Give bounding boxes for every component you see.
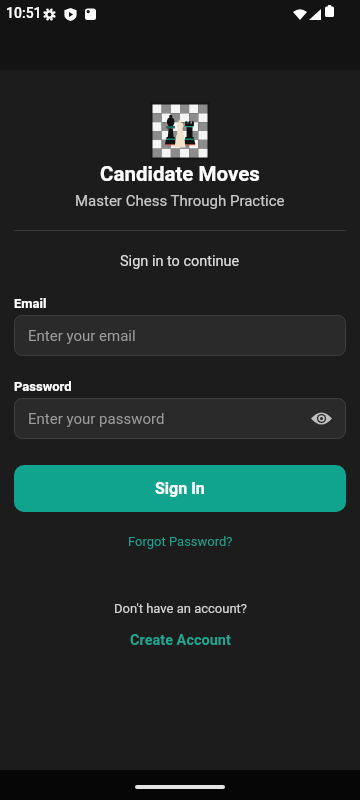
staticText: 10:51 <box>6 5 42 21</box>
staticText: Master Chess Through Practice <box>75 192 285 210</box>
staticText: Create Account <box>130 632 231 649</box>
staticText: Enter your password <box>28 410 165 428</box>
staticText: Email <box>14 296 47 311</box>
button[interactable]: Forgot Password? <box>128 534 233 549</box>
button[interactable]: Sign In <box>14 465 346 512</box>
staticText: Password <box>14 379 72 394</box>
staticText: Sign In <box>155 479 205 498</box>
staticText: Sign in to continue <box>120 253 240 270</box>
staticText: Enter your email <box>28 327 136 345</box>
staticText: Forgot Password? <box>128 534 233 549</box>
button[interactable]: Create Account <box>130 632 231 649</box>
button[interactable]: Enter your password <box>14 398 346 439</box>
staticText: Candidate Moves <box>100 162 260 186</box>
button[interactable]: Enter your email <box>14 315 346 356</box>
staticText: Don't have an account? <box>114 601 247 616</box>
